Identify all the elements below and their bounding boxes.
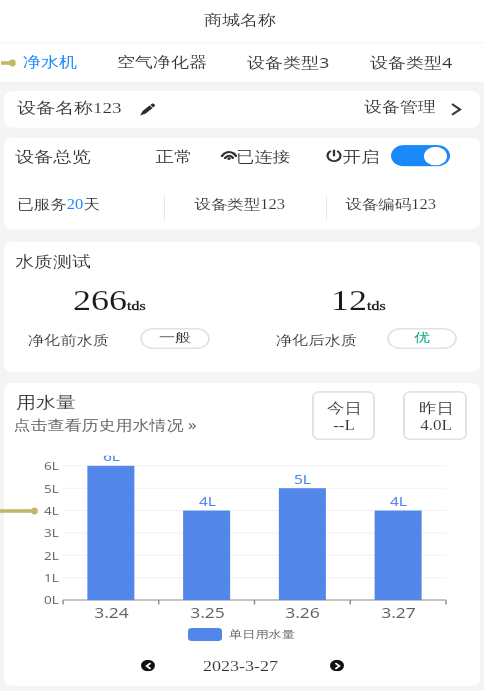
staticText: 3.24 bbox=[94, 602, 129, 622]
staticText: 开启 bbox=[342, 147, 380, 166]
staticText: 空气净化器 bbox=[117, 53, 207, 72]
staticText: 3.27 bbox=[381, 602, 416, 622]
staticText: 5L bbox=[294, 470, 311, 487]
staticText: 商城名称 bbox=[204, 11, 276, 30]
button[interactable]: 设备类型3 bbox=[227, 44, 350, 82]
staticText: 12 bbox=[331, 284, 367, 316]
staticText: 3.26 bbox=[285, 602, 320, 622]
staticText: 净化后水质 bbox=[276, 332, 357, 348]
staticText: 净水机 bbox=[23, 53, 77, 72]
staticText: 已服务20天 bbox=[17, 196, 100, 213]
button[interactable]: 优 bbox=[387, 328, 457, 349]
staticText: 0L bbox=[44, 593, 59, 607]
button[interactable] bbox=[403, 391, 467, 440]
staticText: 设备类型3 bbox=[247, 52, 330, 73]
staticText: 4L bbox=[390, 492, 407, 509]
button[interactable]: 一般 bbox=[140, 328, 210, 349]
staticText: 6L bbox=[103, 456, 120, 465]
staticText: 4.0L bbox=[420, 418, 452, 434]
staticText: --L bbox=[333, 418, 355, 434]
staticText: 设备类型4 bbox=[370, 52, 453, 73]
staticText: 净化前水质 bbox=[28, 332, 109, 348]
staticText: 5L bbox=[44, 481, 59, 496]
staticText: 3L bbox=[44, 525, 59, 540]
staticText: 266 bbox=[73, 284, 127, 316]
staticText: 已连接 bbox=[236, 147, 291, 166]
button[interactable]: 设备管理 bbox=[362, 93, 463, 125]
staticText: 设备名称123 bbox=[17, 98, 122, 118]
staticText: tds bbox=[127, 298, 146, 313]
staticText: 单日用水量 bbox=[229, 627, 295, 641]
staticText: 2L bbox=[44, 548, 59, 563]
staticText: 优 bbox=[414, 329, 430, 346]
button[interactable]: Previous day bbox=[141, 660, 155, 671]
staticText: 一般 bbox=[159, 329, 191, 346]
staticText: 设备类型123 bbox=[194, 196, 285, 213]
staticText: 3.25 bbox=[190, 602, 225, 622]
staticText: 昨日 bbox=[419, 399, 454, 417]
staticText: 4L bbox=[199, 492, 216, 509]
staticText: 6L bbox=[44, 458, 59, 473]
button[interactable]: 净水机 bbox=[3, 44, 97, 82]
staticText: 今日 bbox=[327, 399, 362, 417]
staticText: 设备编码123 bbox=[345, 196, 436, 213]
button[interactable]: 设备类型4 bbox=[350, 44, 473, 82]
button[interactable]: Edit device name bbox=[138, 102, 157, 117]
staticText: 4L bbox=[44, 503, 59, 518]
staticText: 正常 bbox=[155, 147, 193, 166]
button[interactable]: 空气净化器 bbox=[97, 44, 227, 82]
staticText: 1L bbox=[44, 570, 59, 585]
staticText: 设备管理 bbox=[364, 98, 436, 117]
staticText: 设备总览 bbox=[15, 147, 91, 167]
staticText: 2023-3-27 bbox=[203, 657, 278, 674]
staticText: 用水量 bbox=[16, 393, 76, 413]
button[interactable] bbox=[312, 391, 375, 440]
staticText: 点击查看历史用水情况 » bbox=[13, 415, 197, 434]
staticText: tds bbox=[367, 298, 386, 313]
staticText: 水质测试 bbox=[15, 252, 91, 272]
button[interactable]: Next day bbox=[330, 660, 344, 671]
button[interactable]: Power switch bbox=[391, 145, 450, 166]
